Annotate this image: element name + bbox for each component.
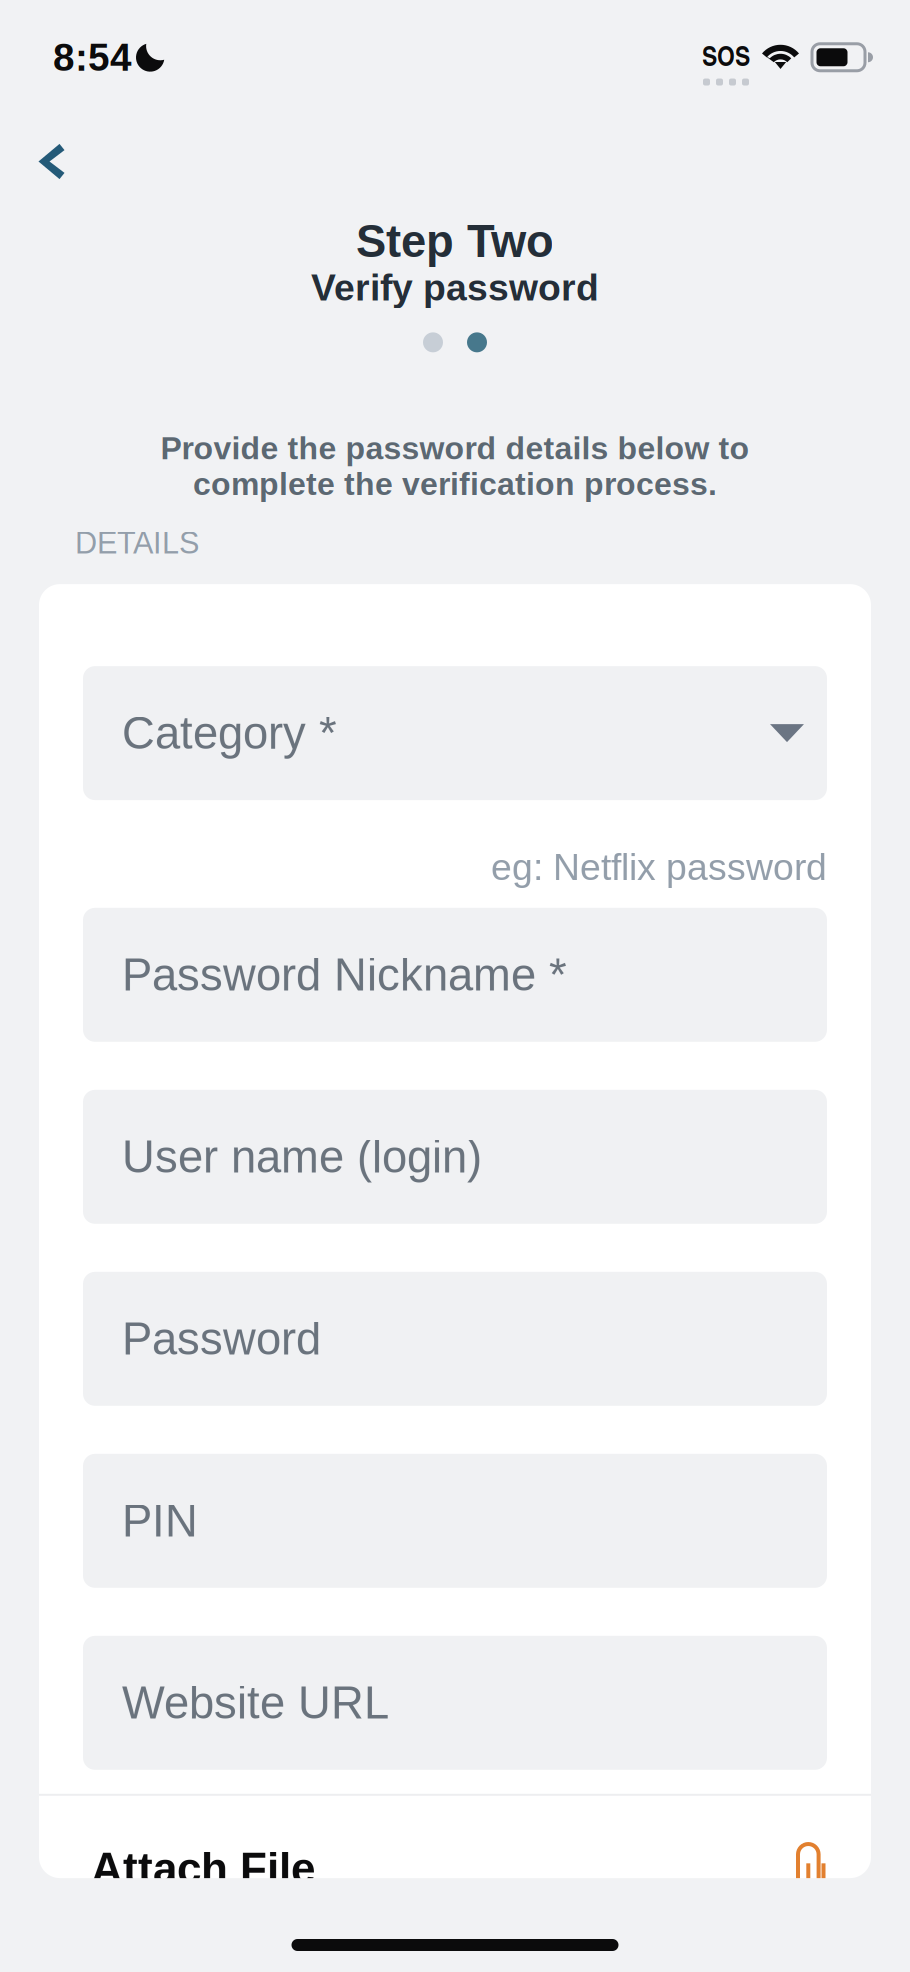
- staticText: SOS: [702, 35, 750, 74]
- staticText: DETAILS: [75, 526, 199, 560]
- button[interactable]: Attach File: [39, 1796, 871, 1893]
- staticText: Provide the password details below to: [160, 430, 749, 466]
- button[interactable]: Category *: [83, 666, 827, 800]
- staticText: 8:54: [53, 36, 132, 79]
- staticText: Website URL: [122, 1677, 389, 1728]
- staticText: eg: Netflix password: [491, 846, 827, 888]
- button[interactable]: PIN: [83, 1454, 827, 1588]
- staticText: User name (login): [122, 1131, 482, 1182]
- staticText: complete the verification process.: [193, 466, 717, 502]
- button[interactable]: Website URL: [83, 1636, 827, 1770]
- staticText: Category *: [122, 708, 337, 758]
- staticText: Verify password: [311, 267, 599, 308]
- staticText: Attach File: [91, 1844, 315, 1893]
- staticText: PIN: [122, 1495, 198, 1546]
- button[interactable]: Password Nickname *: [83, 908, 827, 1042]
- button[interactable]: Back: [0, 128, 93, 192]
- staticText: Password Nickname *: [122, 949, 567, 1000]
- staticText: Password: [122, 1313, 321, 1364]
- button[interactable]: Password: [83, 1272, 827, 1406]
- button[interactable]: User name (login): [83, 1090, 827, 1224]
- staticText: Step Two: [356, 216, 554, 267]
